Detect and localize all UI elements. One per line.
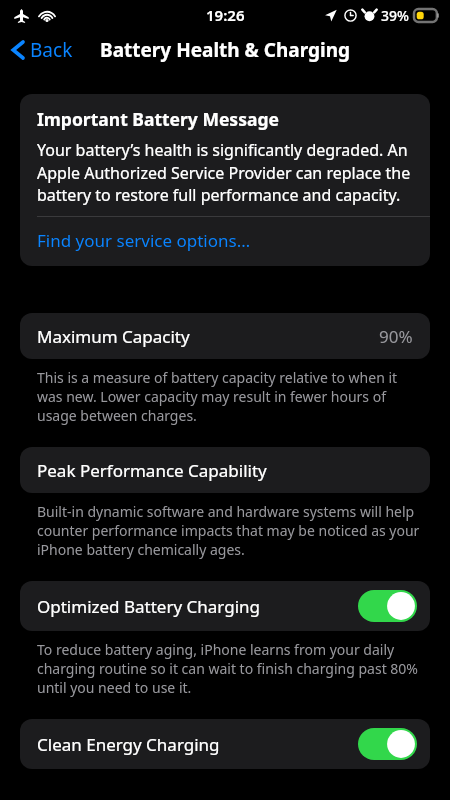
other: Back [12,40,24,60]
staticText: Back [30,37,73,63]
staticText: Battery Health & Charging [100,37,351,63]
staticText: Important Battery Message [37,107,279,131]
staticText: Maximum Capacity [37,325,190,348]
button[interactable]: Optimized Battery Charging [20,581,430,631]
button[interactable]: Clean Energy Charging [20,719,430,769]
staticText: Find your service options… [37,229,251,252]
staticText: Clean Energy Charging [37,733,220,756]
button[interactable]: On [358,728,417,760]
button[interactable]: Back [0,33,81,67]
staticText: 19:26 [206,5,245,25]
button[interactable]: Peak Performance Capability [20,447,430,493]
button[interactable]: Find your service options… [20,217,430,266]
staticText: To reduce battery aging, iPhone learns f… [37,640,420,697]
staticText: 39% [381,6,409,25]
staticText: 90% [379,325,413,348]
button[interactable]: On [358,590,417,622]
staticText: This is a measure of battery capacity re… [37,368,420,425]
staticText: Peak Performance Capability [37,459,267,482]
staticText: Your battery’s health is significantly d… [37,139,413,205]
staticText: Built-in dynamic software and hardware s… [37,502,420,559]
button[interactable]: Maximum Capacity [20,313,430,359]
staticText: Optimized Battery Charging [37,595,260,618]
